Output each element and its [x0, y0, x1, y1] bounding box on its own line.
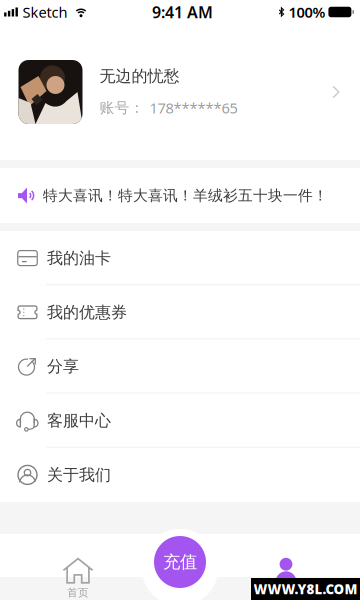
staticText: 特大喜讯！特大喜讯！羊绒衫五十块一件！	[43, 186, 328, 204]
button[interactable]: 特大喜讯！特大喜讯！羊绒衫五十块一件！	[0, 168, 360, 223]
button[interactable]: 我的	[241, 557, 331, 600]
staticText: 账号：	[99, 99, 144, 117]
staticText: 9:41 AM	[152, 1, 213, 23]
staticText: 无边的忧愁	[99, 66, 179, 86]
button[interactable]: 我的优惠券	[0, 285, 360, 339]
staticText: 我的油卡	[47, 248, 111, 268]
staticText: 首页	[67, 586, 89, 599]
button[interactable]: 我的油卡	[0, 231, 360, 285]
staticText: 客服中心	[47, 411, 111, 431]
staticText: 充值	[163, 551, 197, 573]
staticText: Sketch	[22, 2, 67, 22]
button[interactable]: 关于我们	[0, 448, 360, 502]
staticText: 100%	[288, 2, 325, 22]
staticText: 分享	[47, 357, 79, 376]
button[interactable]: 充值	[148, 530, 212, 594]
staticText: 我的优惠券	[47, 302, 127, 322]
button[interactable]: 无边的忧愁	[0, 24, 360, 160]
staticText: 我的	[275, 586, 297, 599]
button[interactable]: 分享	[0, 339, 360, 394]
button[interactable]: 客服中心	[0, 394, 360, 448]
staticText: 178******65	[149, 98, 237, 118]
button[interactable]: 首页	[33, 557, 123, 600]
staticText: WWW.Y8L.COM	[253, 580, 357, 598]
staticText: 关于我们	[47, 465, 111, 485]
